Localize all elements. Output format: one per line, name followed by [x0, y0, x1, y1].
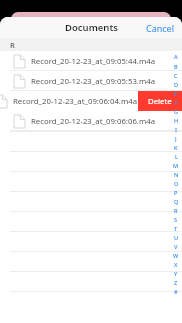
- staticText: T: [174, 225, 178, 233]
- staticText: C: [174, 72, 178, 80]
- staticText: Record_20-12-23_at_09:06:04.m4a: [13, 96, 138, 107]
- button[interactable]: Record_20-12-23_at_09:05:53.m4a: [0, 71, 182, 91]
- staticText: V: [174, 243, 178, 251]
- staticText: M: [173, 162, 179, 170]
- staticText: #: [174, 288, 178, 296]
- staticText: R: [174, 207, 178, 215]
- button[interactable]: Record_20-12-23_at_09:05:44.m4a: [0, 51, 182, 71]
- staticText: Record_20-12-23_at_09:05:53.m4a: [31, 76, 156, 87]
- staticText: Z: [174, 279, 178, 287]
- staticText: W: [173, 252, 179, 260]
- staticText: F: [175, 99, 178, 107]
- staticText: Record_20-12-23_at_09:06:06.m4a: [31, 116, 156, 127]
- staticText: Delete: [148, 96, 172, 107]
- button[interactable]: Alphabet index: [170, 52, 182, 296]
- staticText: Y: [174, 270, 178, 278]
- staticText: H: [174, 117, 179, 125]
- staticText: G: [174, 108, 179, 116]
- staticText: U: [174, 234, 179, 242]
- staticText: N: [174, 171, 179, 179]
- staticText: K: [174, 144, 178, 152]
- button[interactable]: Record_20-12-23_at_09:06:04.m4a: [0, 91, 164, 111]
- staticText: J: [175, 135, 177, 143]
- staticText: S: [174, 216, 178, 224]
- staticText: X: [174, 261, 178, 269]
- staticText: L: [175, 153, 178, 161]
- staticText: R: [10, 40, 15, 50]
- staticText: E: [174, 90, 178, 98]
- staticText: O: [174, 180, 179, 188]
- staticText: D: [174, 81, 179, 89]
- staticText: B: [174, 63, 178, 71]
- staticText: P: [174, 189, 178, 197]
- staticText: I: [175, 126, 177, 134]
- button[interactable]: Record_20-12-23_at_09:06:06.m4a: [0, 111, 182, 131]
- staticText: Q: [174, 198, 179, 206]
- staticText: A: [174, 53, 178, 61]
- button[interactable]: Cancel: [139, 19, 182, 37]
- staticText: Record_20-12-23_at_09:05:44.m4a: [31, 56, 156, 67]
- button[interactable]: Delete: [138, 91, 182, 111]
- staticText: Documents: [65, 21, 118, 34]
- staticText: Cancel: [146, 22, 175, 34]
